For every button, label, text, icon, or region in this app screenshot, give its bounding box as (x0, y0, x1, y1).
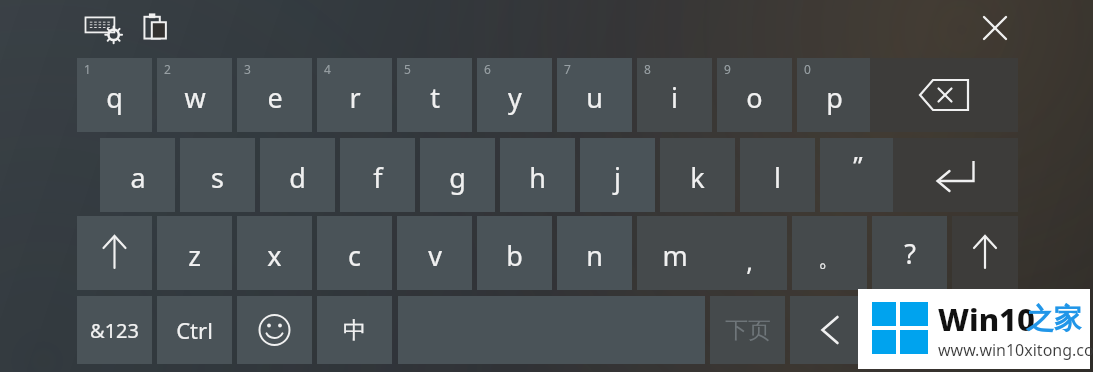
staticText: Win10 (938, 298, 1035, 340)
staticText: www.win10xitong.com (938, 339, 1093, 361)
staticText: Ctrl (176, 315, 213, 345)
button[interactable]: , (712, 216, 787, 290)
staticText: c (348, 237, 361, 274)
button[interactable]: d (260, 138, 335, 212)
button[interactable]: ? (872, 216, 947, 290)
staticText: w (184, 79, 206, 116)
button[interactable]: z (157, 216, 232, 290)
staticText: z (188, 237, 201, 274)
staticText: p (826, 79, 843, 116)
staticText: 8 (644, 61, 651, 77)
button[interactable]: x (237, 216, 312, 290)
staticText: 2 (164, 61, 171, 77)
button[interactable]: i (637, 58, 712, 132)
button[interactable]: e (237, 58, 312, 132)
staticText: , (746, 244, 753, 278)
staticText: u (586, 79, 603, 116)
button[interactable]: y (477, 58, 552, 132)
button[interactable]: Keyboard settings (84, 12, 122, 42)
staticText: e (267, 79, 283, 116)
staticText: &123 (90, 317, 139, 344)
staticText: n (586, 237, 603, 274)
button[interactable]: Enter (893, 138, 1018, 212)
staticText: ? (904, 235, 916, 272)
staticText: s (211, 159, 224, 196)
button[interactable]: Clipboard (139, 10, 171, 44)
staticText: ” (853, 147, 863, 182)
button[interactable]: r (317, 58, 392, 132)
staticText: 0 (804, 61, 811, 77)
button[interactable]: p (797, 58, 872, 132)
staticText: q (106, 79, 123, 116)
staticText: l (774, 159, 781, 196)
button[interactable]: a (100, 138, 175, 212)
staticText: a (130, 159, 146, 196)
staticText: j (614, 159, 621, 196)
button[interactable]: &123 (77, 296, 152, 364)
staticText: 1 (84, 61, 91, 77)
staticText: h (529, 159, 546, 196)
staticText: i (671, 79, 678, 116)
button[interactable]: ” (820, 138, 895, 212)
staticText: m (662, 237, 688, 274)
staticText: 之家 (1026, 301, 1082, 336)
staticText: b (506, 237, 523, 274)
button[interactable]: f (340, 138, 415, 212)
staticText: y (508, 79, 522, 116)
button[interactable]: Previous (790, 296, 865, 364)
staticText: 6 (484, 61, 491, 77)
button[interactable]: g (420, 138, 495, 212)
staticText: f (373, 159, 383, 196)
staticText: 3 (244, 61, 251, 77)
staticText: o (746, 79, 763, 116)
staticText: g (449, 159, 466, 196)
staticText: 7 (564, 61, 571, 77)
staticText: 4 (324, 61, 331, 77)
button[interactable]: j (580, 138, 655, 212)
button[interactable]: Backspace (870, 58, 1018, 132)
button[interactable]: Close (975, 9, 1015, 47)
button[interactable]: t (397, 58, 472, 132)
staticText: k (690, 159, 705, 196)
staticText: v (428, 237, 442, 274)
staticText: t (430, 79, 440, 116)
button[interactable]: 中 (317, 296, 392, 364)
staticText: 中 (343, 316, 366, 345)
button[interactable]: o (717, 58, 792, 132)
button[interactable]: Shift (952, 216, 1018, 290)
button[interactable]: n (557, 216, 632, 290)
button[interactable]: v (397, 216, 472, 290)
staticText: 9 (724, 61, 731, 77)
button[interactable]: q (77, 58, 152, 132)
staticText: d (289, 159, 306, 196)
button[interactable]: 。 (792, 216, 867, 290)
staticText: 下页 (725, 316, 771, 345)
button[interactable]: b (477, 216, 552, 290)
button[interactable]: k (660, 138, 735, 212)
button[interactable]: u (557, 58, 632, 132)
staticText: 5 (404, 61, 411, 77)
button[interactable]: h (500, 138, 575, 212)
button[interactable]: w (157, 58, 232, 132)
staticText: x (267, 237, 282, 274)
button[interactable]: Emoji (237, 296, 312, 364)
button[interactable]: c (317, 216, 392, 290)
button[interactable]: 下页 (710, 296, 785, 364)
button[interactable]: s (180, 138, 255, 212)
button[interactable]: m (637, 216, 712, 290)
button[interactable]: Ctrl (157, 296, 232, 364)
button[interactable]: Shift (77, 216, 152, 290)
staticText: 。 (818, 244, 841, 273)
button[interactable]: l (740, 138, 815, 212)
staticText: r (349, 79, 361, 116)
